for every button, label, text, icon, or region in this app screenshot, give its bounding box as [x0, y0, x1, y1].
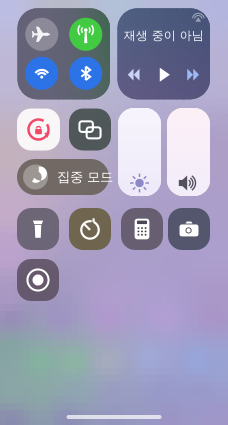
- staticText: 재생 중이 아님: [124, 28, 204, 43]
- button[interactable]: Screen Mirroring: [69, 108, 111, 150]
- button[interactable]: Cellular Data: [69, 18, 102, 51]
- button[interactable]: Camera: [168, 208, 210, 250]
- button[interactable]: Calculator: [121, 208, 163, 250]
- button[interactable]: Airplane Mode: [25, 18, 58, 51]
- button[interactable]: Rewind: [123, 65, 145, 85]
- button[interactable]: Fast forward: [182, 65, 204, 85]
- button[interactable]: Rotation Lock: [17, 108, 60, 150]
- button[interactable]: AirPlay: [190, 9, 207, 26]
- button[interactable]: Timer: [69, 208, 111, 250]
- button[interactable]: Wi-Fi: [25, 57, 58, 90]
- button[interactable]: Flashlight: [17, 208, 59, 250]
- button[interactable]: Play: [153, 64, 175, 86]
- button[interactable]: Bluetooth: [69, 57, 102, 90]
- button[interactable]: Screen Recording: [17, 259, 59, 301]
- button[interactable]: Focus: [17, 159, 109, 195]
- staticText: 집중 모드: [57, 169, 113, 185]
